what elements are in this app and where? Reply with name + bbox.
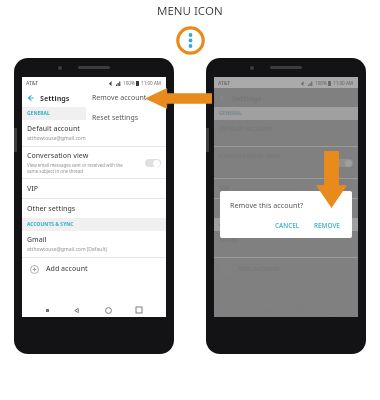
button[interactable]: CANCEL (271, 219, 304, 232)
button[interactable]: Gmail (214, 231, 358, 257)
staticText: ACCOUNTS & SYNC (27, 221, 74, 228)
staticText: 100% (123, 80, 135, 86)
button[interactable]: Home (105, 307, 112, 314)
button[interactable]: VIP (22, 179, 166, 198)
staticText: Settings (40, 93, 70, 103)
staticText: MENU ICON (157, 3, 223, 19)
button[interactable]: Back (22, 88, 166, 107)
button[interactable]: Reset settings (86, 108, 166, 128)
button[interactable]: Other settings (214, 199, 358, 218)
staticText: View email messages sent or received wit… (27, 162, 123, 168)
staticText: 11:00 AM (141, 80, 162, 86)
staticText: VIP (27, 184, 39, 194)
staticText: REMOVE (314, 221, 340, 230)
staticText: AT&T (218, 79, 231, 86)
staticText: same subject in one thread (27, 168, 83, 174)
button[interactable]: Remove account (86, 88, 166, 108)
staticText: 11:00 AM (333, 80, 354, 86)
staticText: ACCOUNTS & SYNC (219, 221, 266, 228)
button[interactable]: Recents (136, 307, 142, 313)
button[interactable]: Conversation view (22, 147, 166, 178)
staticText: atthowtouse@gmail.com (Default) (27, 246, 108, 253)
button[interactable]: REMOVE (310, 219, 344, 232)
staticText: GENERAL (27, 110, 50, 117)
button[interactable]: Conversation view (214, 147, 358, 178)
other: Back (27, 94, 35, 102)
staticText: Remove this account? (230, 200, 304, 210)
button[interactable]: Other settings (22, 199, 166, 218)
staticText: atthowtouse@gmail.com (27, 135, 86, 142)
button[interactable]: Default account (22, 120, 166, 146)
staticText: Gmail (219, 235, 239, 245)
staticText: Remove account (92, 93, 147, 103)
other: Back (219, 94, 227, 102)
staticText: 100% (315, 80, 327, 86)
button[interactable]: Add account (22, 258, 166, 280)
staticText: Add account (46, 264, 88, 274)
button[interactable]: Back (73, 307, 80, 314)
staticText: GENERAL (219, 110, 242, 117)
staticText: Other settings (219, 204, 268, 214)
button[interactable]: Gmail (22, 231, 166, 257)
staticText: Conversation view (27, 151, 89, 161)
button[interactable]: VIP (214, 179, 358, 198)
staticText: Gmail (27, 235, 47, 245)
staticText: Reset settings (92, 113, 139, 123)
staticText: CANCEL (275, 221, 300, 230)
staticText: Other settings (27, 204, 76, 214)
staticText: VIP (219, 184, 231, 194)
button[interactable]: Menu icon (176, 26, 205, 55)
staticText: AT&T (26, 79, 39, 86)
staticText: Default account (27, 124, 81, 134)
